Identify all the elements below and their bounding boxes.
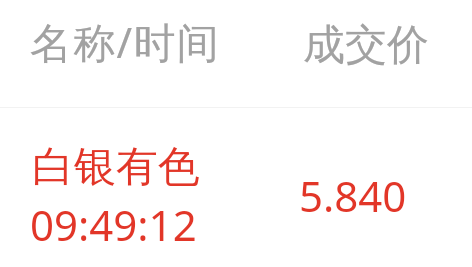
- staticText: 09:49:12: [30, 196, 197, 253]
- staticText: 成交价: [303, 19, 429, 72]
- staticText: 5.840: [299, 167, 407, 224]
- staticText: 名称/时间: [30, 13, 221, 70]
- staticText: 白银有色: [32, 141, 200, 194]
